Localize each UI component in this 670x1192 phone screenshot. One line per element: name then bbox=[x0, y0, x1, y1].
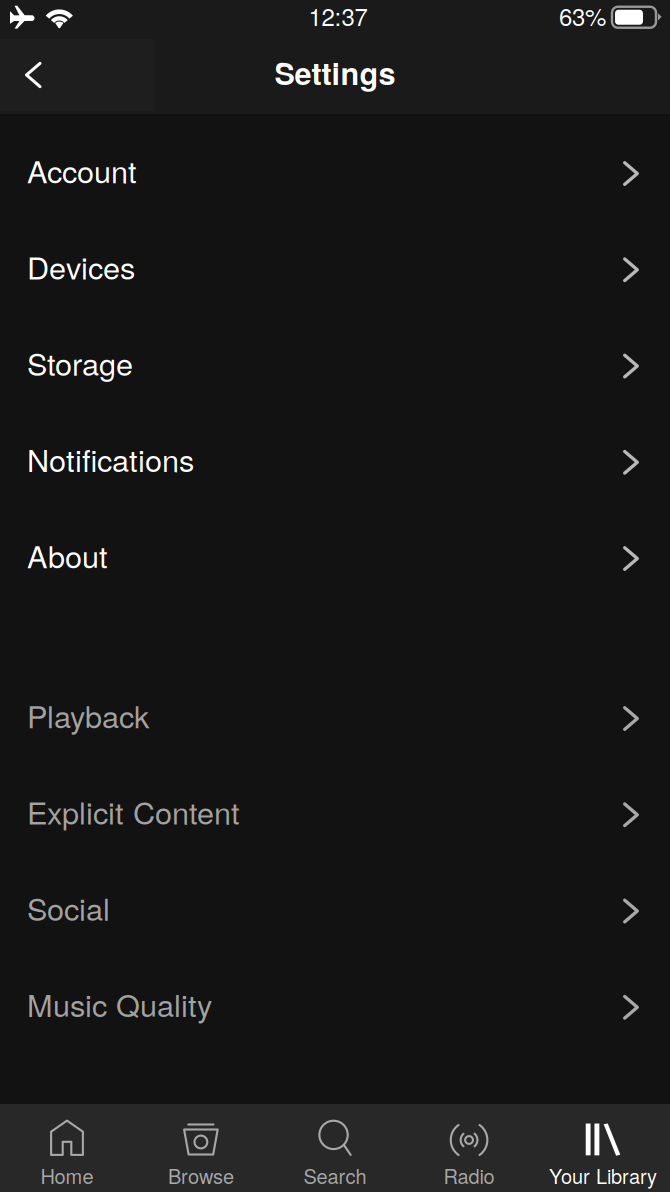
staticText: Browse bbox=[168, 1161, 234, 1190]
staticText: 63% bbox=[559, 0, 606, 33]
button[interactable]: Browse bbox=[134, 1104, 268, 1192]
staticText: Radio bbox=[443, 1161, 494, 1190]
button[interactable]: Search bbox=[268, 1104, 402, 1192]
button[interactable]: Account bbox=[0, 125, 670, 222]
staticText: Music Quality bbox=[27, 982, 212, 1026]
staticText: Home bbox=[40, 1161, 93, 1190]
button[interactable]: Home bbox=[0, 1104, 134, 1192]
staticText: Search bbox=[303, 1161, 366, 1190]
staticText: Your Library bbox=[549, 1161, 657, 1190]
staticText: Settings bbox=[274, 50, 395, 94]
staticText: 12:37 bbox=[308, 0, 367, 33]
staticText: Playback bbox=[27, 693, 149, 737]
button[interactable]: Radio bbox=[402, 1104, 536, 1192]
button[interactable]: Explicit Content bbox=[0, 767, 670, 863]
staticText: Notifications bbox=[27, 437, 194, 481]
button[interactable]: Music Quality bbox=[0, 959, 670, 1055]
button[interactable]: Storage bbox=[0, 318, 670, 414]
button[interactable]: Your Library bbox=[536, 1104, 670, 1192]
button[interactable]: About bbox=[0, 510, 670, 607]
staticText: Social bbox=[27, 886, 110, 929]
button[interactable]: Playback bbox=[0, 670, 670, 767]
staticText: Storage bbox=[27, 341, 133, 384]
staticText: Explicit Content bbox=[27, 789, 240, 833]
staticText: About bbox=[27, 533, 108, 577]
button[interactable]: Social bbox=[0, 863, 670, 959]
button[interactable]: Back bbox=[0, 39, 155, 111]
staticText: Account bbox=[27, 148, 137, 192]
button[interactable]: Devices bbox=[0, 222, 670, 318]
staticText: Devices bbox=[27, 244, 135, 288]
button[interactable]: Notifications bbox=[0, 414, 670, 510]
